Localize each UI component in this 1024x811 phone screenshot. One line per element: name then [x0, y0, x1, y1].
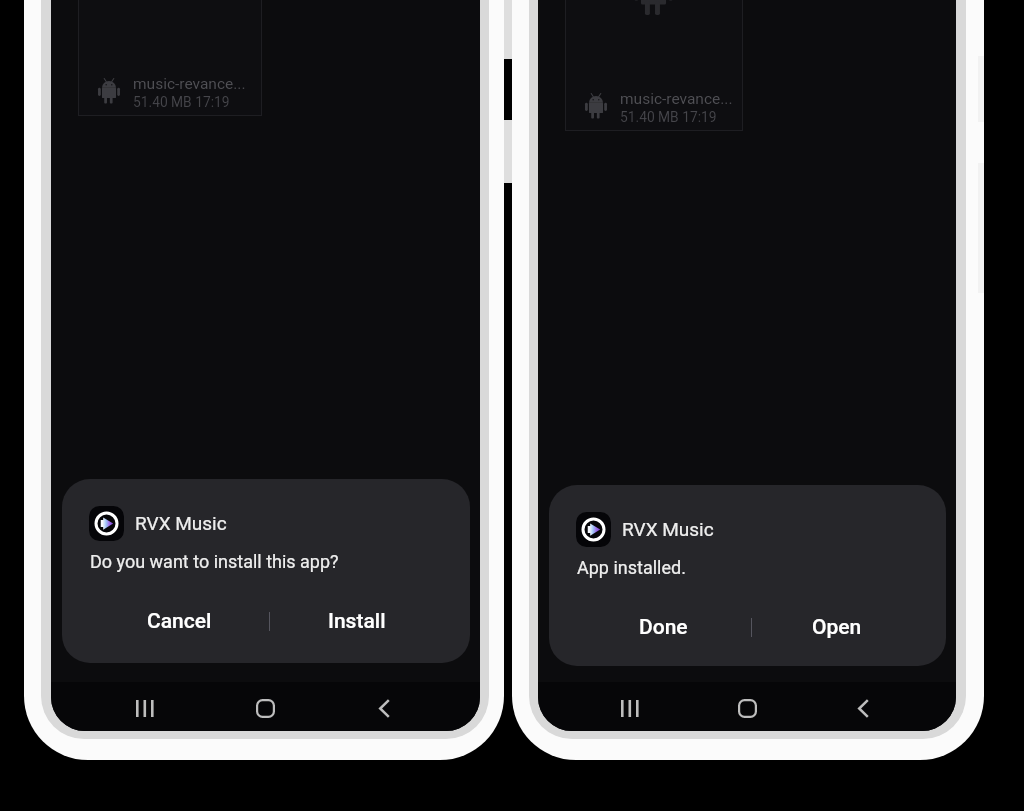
- button[interactable]: [78, 0, 262, 116]
- staticText: music-revance...: [620, 90, 733, 108]
- button[interactable]: [565, 0, 743, 131]
- staticText: Open: [812, 615, 862, 640]
- staticText: App installed.: [577, 557, 686, 578]
- button[interactable]: Install: [266, 597, 470, 645]
- staticText: Install: [328, 609, 386, 634]
- staticText: RVX Music: [135, 512, 227, 534]
- staticText: Do you want to install this app?: [90, 551, 339, 572]
- button[interactable]: Home: [709, 683, 785, 731]
- button[interactable]: Done: [549, 603, 748, 651]
- button[interactable]: Cancel: [62, 597, 266, 645]
- button[interactable]: Back: [825, 683, 901, 731]
- button[interactable]: Back: [346, 683, 422, 731]
- staticText: 51.40 MB 17:19: [133, 94, 230, 110]
- staticText: music-revance...: [133, 75, 246, 93]
- staticText: RVX Music: [622, 518, 714, 540]
- button[interactable]: Recent apps: [592, 683, 668, 731]
- button[interactable]: Home: [227, 683, 303, 731]
- button[interactable]: Open: [748, 603, 946, 651]
- staticText: 51.40 MB 17:19: [620, 109, 717, 125]
- button[interactable]: Recent apps: [107, 683, 183, 731]
- staticText: Done: [639, 615, 688, 640]
- staticText: Cancel: [147, 609, 212, 634]
